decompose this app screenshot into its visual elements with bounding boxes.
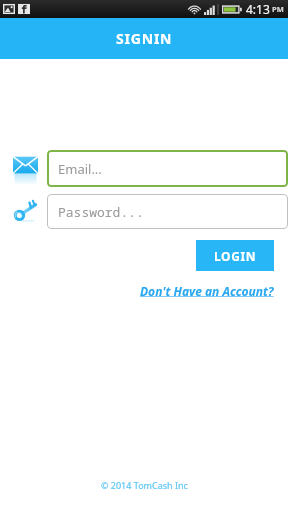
staticText: Password...: [58, 203, 144, 221]
other: Password: [13, 198, 38, 226]
other: Email: [13, 155, 38, 183]
staticText: Don't Have an Account?: [140, 283, 274, 299]
button[interactable]: Don't Have an Account?: [139, 282, 275, 300]
button[interactable]: Password...: [47, 194, 288, 229]
staticText: © 2014 TomCash Inc: [101, 479, 188, 491]
staticText: PM: [272, 4, 284, 14]
staticText: LOGIN: [214, 248, 257, 264]
staticText: SIGNIN: [116, 29, 173, 48]
button[interactable]: LOGIN: [196, 240, 274, 271]
button[interactable]: Email...: [47, 150, 288, 187]
staticText: Email...: [58, 160, 102, 178]
staticText: 4:13: [246, 1, 270, 17]
